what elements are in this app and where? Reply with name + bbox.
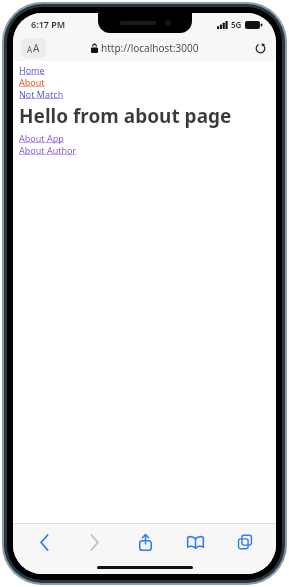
staticText: About Author [19, 144, 77, 156]
button[interactable]: Forward [77, 527, 111, 557]
button[interactable]: Share [128, 527, 162, 557]
button[interactable]: About Author [19, 144, 77, 156]
button[interactable]: About App [19, 132, 64, 144]
staticText: A [33, 41, 40, 55]
button[interactable]: Back [27, 527, 61, 557]
button[interactable]: Page settings [21, 38, 46, 58]
button[interactable]: Tabs [228, 527, 262, 557]
button[interactable]: Reload [252, 40, 268, 56]
staticText: About [19, 76, 45, 88]
staticText: Home [19, 64, 45, 76]
staticText: Hello from about page [19, 103, 232, 129]
button[interactable]: About [19, 76, 45, 88]
button[interactable]: http://localhost:3000 [91, 41, 199, 55]
staticText: http://localhost:3000 [101, 41, 199, 55]
staticText: Not Match [19, 88, 64, 100]
staticText: 5G [231, 19, 242, 30]
staticText: A [27, 44, 33, 55]
staticText: 6:17 PM [31, 18, 66, 30]
staticText: About App [19, 132, 64, 144]
button[interactable]: Home [19, 64, 45, 76]
button[interactable]: Not Match [19, 88, 64, 100]
button[interactable]: Bookmarks [178, 527, 212, 557]
